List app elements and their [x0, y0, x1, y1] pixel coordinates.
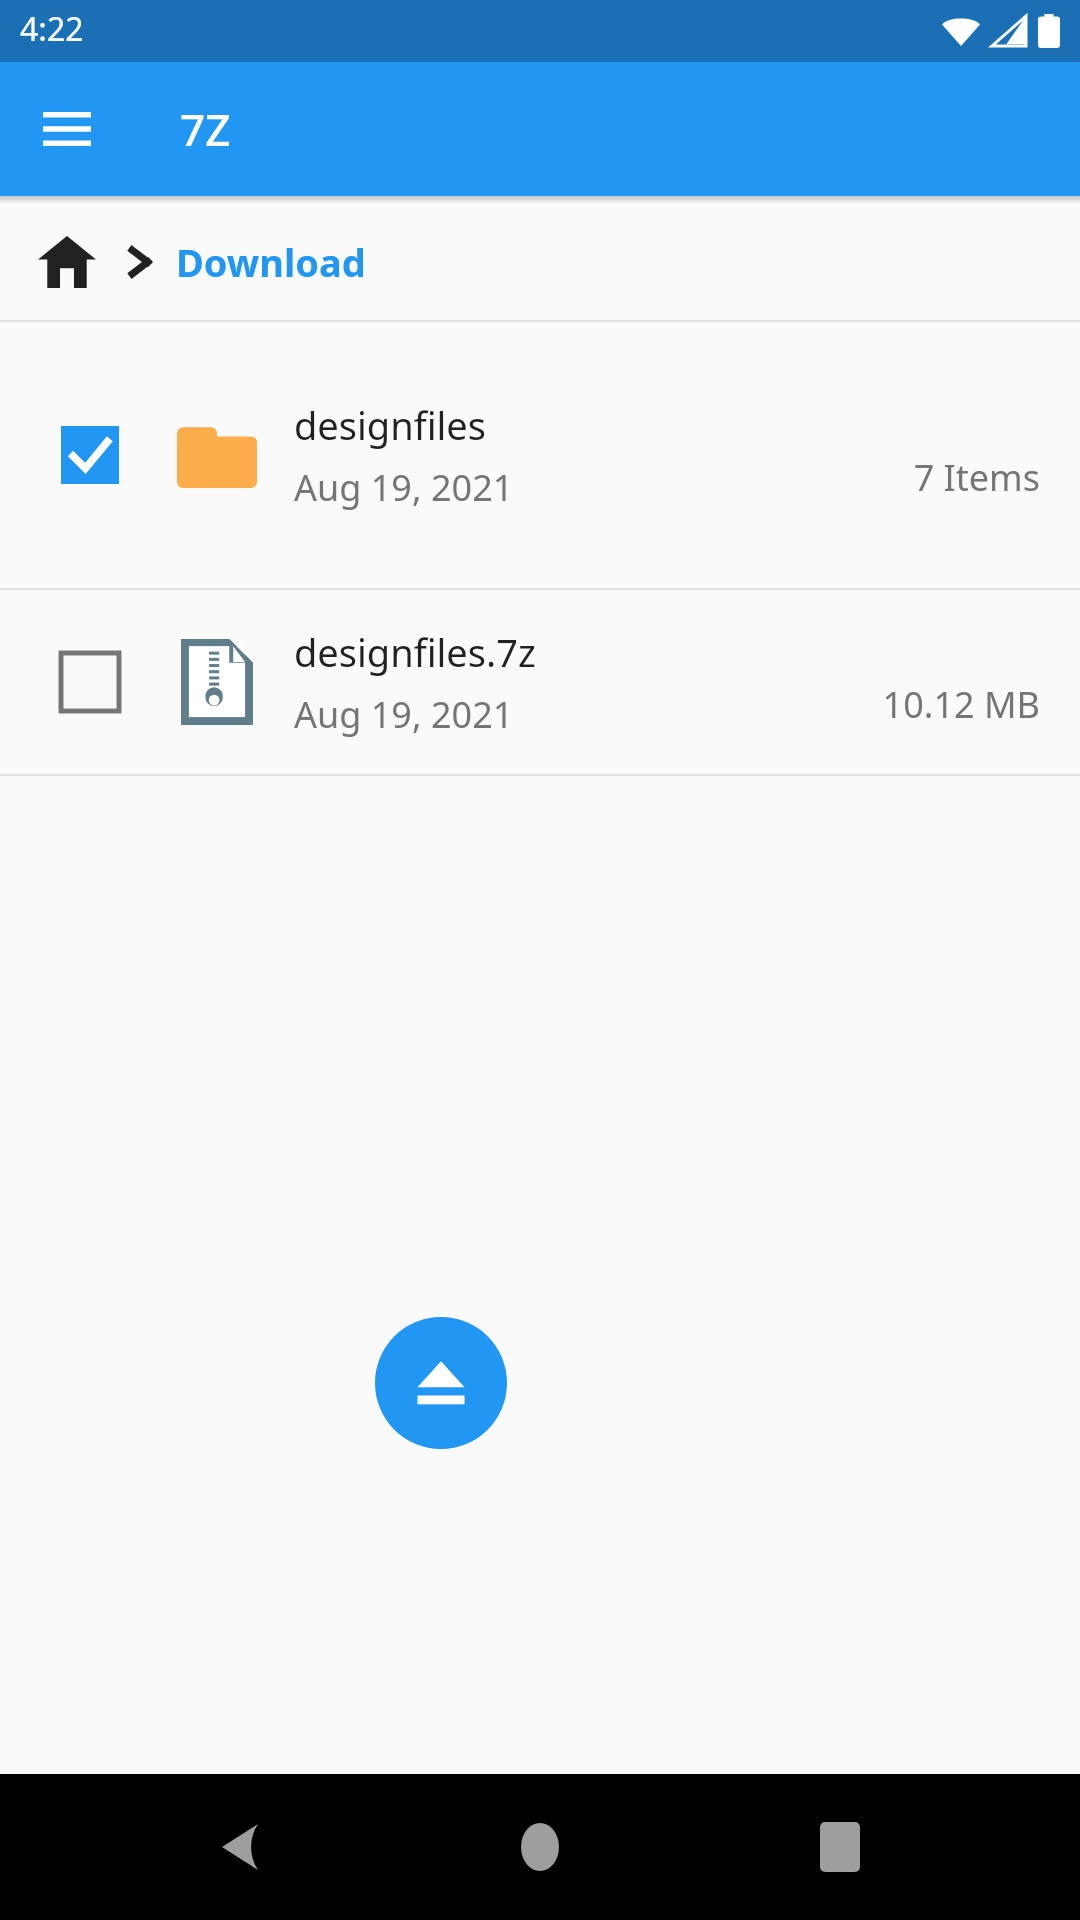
staticText: 10.12 MB: [882, 680, 1040, 729]
staticText: 4:22: [20, 7, 84, 51]
staticText: designfiles.7z: [294, 626, 536, 678]
staticText: designfiles: [294, 399, 486, 451]
staticText: Aug 19, 2021: [294, 690, 514, 739]
button[interactable]: Deselect designfiles: [52, 417, 128, 493]
button[interactable]: Back: [180, 1787, 300, 1907]
staticText: Download: [176, 236, 366, 288]
staticText: 7 Items: [913, 453, 1040, 502]
staticText: 7Z: [180, 99, 231, 159]
button[interactable]: Home: [480, 1787, 600, 1907]
button[interactable]: Download: [176, 236, 366, 288]
staticText: Aug 19, 2021: [294, 463, 514, 512]
button[interactable]: Home: [30, 225, 104, 299]
button[interactable]: Recent apps: [780, 1787, 900, 1907]
button[interactable]: Open navigation menu: [18, 80, 116, 178]
button[interactable]: Extract: [375, 1317, 507, 1449]
button[interactable]: Select designfiles.7z: [52, 644, 128, 720]
button[interactable]: Select designfiles.7z: [0, 590, 1080, 774]
button[interactable]: Deselect designfiles: [0, 322, 1080, 588]
